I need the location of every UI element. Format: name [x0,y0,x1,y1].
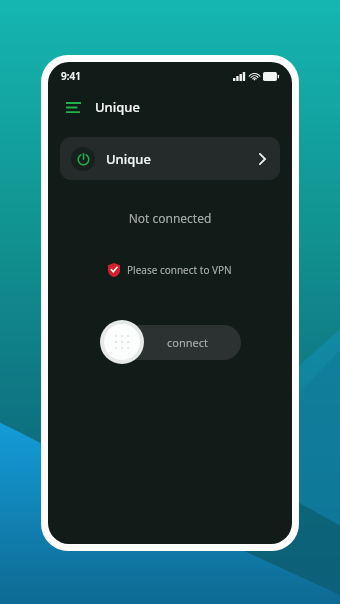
staticText: connect [167,335,208,350]
staticText: Unique [106,150,151,168]
staticText: Please connect to VPN [127,263,232,277]
staticText: 9:41 [61,69,81,83]
button[interactable]: Menu [62,96,84,118]
staticText: Not connected [48,210,292,226]
other: Open server list [255,151,269,167]
staticText: Unique [95,98,140,116]
button[interactable]: Unique [60,137,280,180]
button[interactable]: connect [100,320,241,364]
